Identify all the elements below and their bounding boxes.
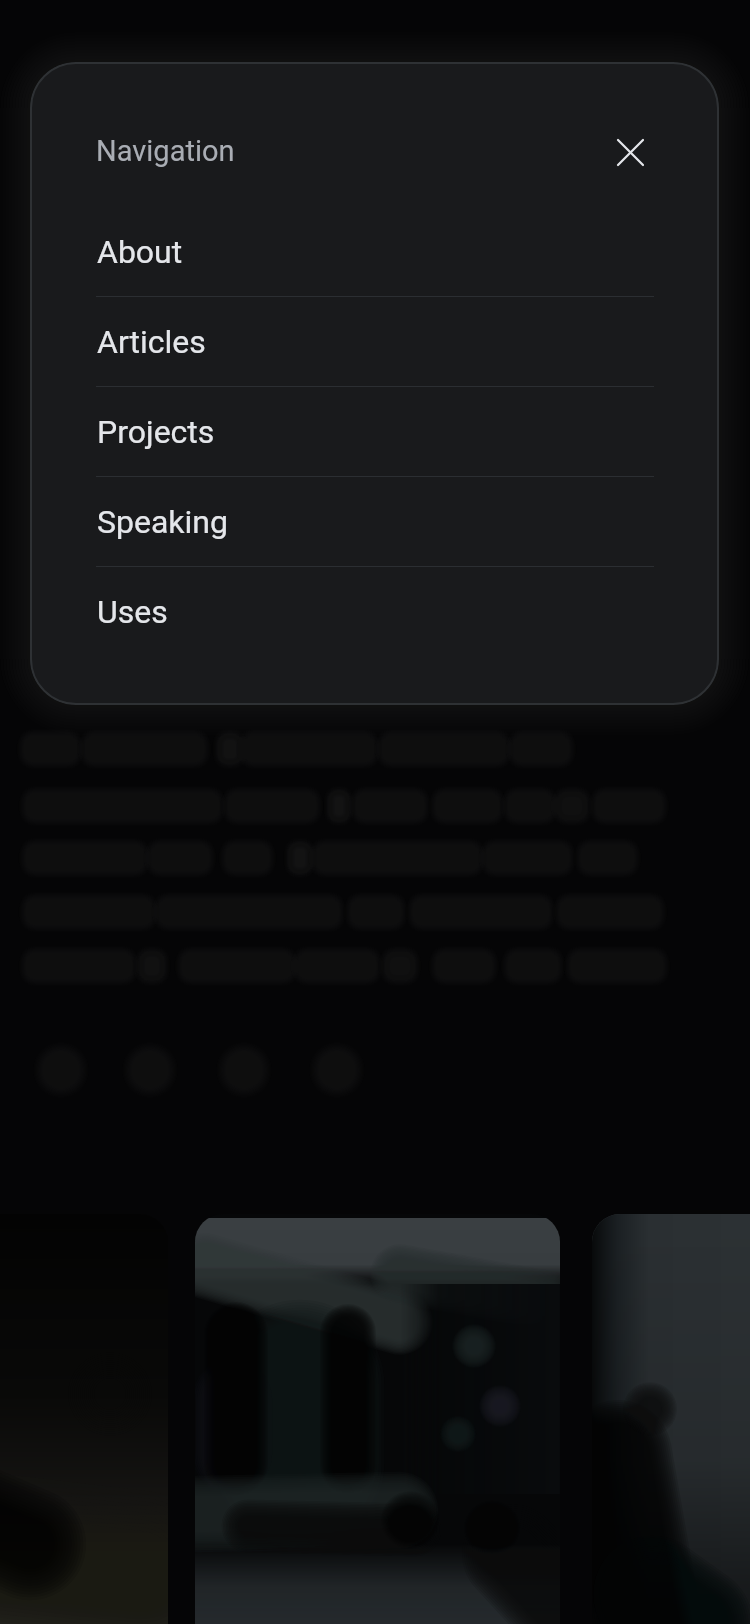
button[interactable]: About [30,207,719,297]
staticText: Uses [97,593,168,631]
staticText: Speaking [97,503,228,541]
button[interactable]: Uses [30,567,719,657]
button[interactable]: Articles [30,297,719,387]
button[interactable]: Close navigation [598,120,662,184]
button[interactable]: Speaking [30,477,719,567]
button[interactable]: Projects [30,387,719,477]
staticText: Articles [97,323,206,361]
staticText: About [97,233,183,271]
staticText: Navigation [96,134,235,168]
staticText: Projects [97,413,215,451]
